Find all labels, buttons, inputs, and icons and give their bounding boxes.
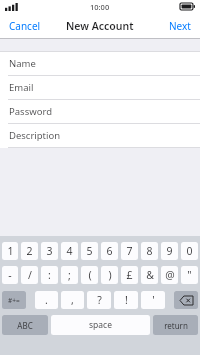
button[interactable]: ' xyxy=(141,291,165,309)
button[interactable]: ) xyxy=(101,266,118,284)
staticText: 10:00 xyxy=(90,2,110,12)
staticText: , xyxy=(71,293,74,307)
button[interactable]: 7 xyxy=(121,242,138,260)
button[interactable]: return xyxy=(153,315,198,335)
button[interactable]: Description xyxy=(0,124,200,148)
staticText: 2 xyxy=(26,244,33,258)
button[interactable]: 6 xyxy=(101,242,118,260)
staticText: : xyxy=(48,268,51,282)
staticText: 6 xyxy=(106,244,113,258)
staticText: ) xyxy=(108,268,112,282)
button[interactable]: 1 xyxy=(2,242,18,260)
button[interactable]: 9 xyxy=(161,242,178,260)
staticText: #+= xyxy=(8,296,20,305)
staticText: / xyxy=(28,268,32,282)
staticText: New Account xyxy=(66,19,134,33)
button[interactable]: Cancel xyxy=(0,13,50,38)
staticText: 1 xyxy=(7,244,14,258)
staticText: ; xyxy=(68,268,71,282)
button[interactable]: space xyxy=(51,315,150,335)
button[interactable]: @ xyxy=(161,266,178,284)
button[interactable]: & xyxy=(141,266,158,284)
staticText: return xyxy=(164,320,188,331)
button[interactable]: Next xyxy=(160,13,200,38)
staticText: . xyxy=(45,293,48,307)
button[interactable]: Name xyxy=(0,52,200,76)
staticText: ( xyxy=(88,268,92,282)
button[interactable]: ( xyxy=(81,266,98,284)
button[interactable]: Password xyxy=(0,100,200,124)
staticText: 5 xyxy=(86,244,93,258)
button[interactable]: Email xyxy=(0,76,200,100)
staticText: 9 xyxy=(166,244,173,258)
staticText: - xyxy=(8,268,12,282)
button[interactable]: 3 xyxy=(41,242,58,260)
staticText: Next xyxy=(169,19,191,33)
button[interactable]: 0 xyxy=(181,242,198,260)
staticText: ! xyxy=(125,293,128,307)
staticText: space xyxy=(89,319,112,331)
staticText: Password xyxy=(9,105,52,118)
button[interactable]: ; xyxy=(61,266,78,284)
staticText: Email xyxy=(9,81,34,94)
button[interactable]: / xyxy=(21,266,38,284)
staticText: & xyxy=(146,268,154,282)
button[interactable]: - xyxy=(2,266,18,284)
button[interactable]: " xyxy=(181,266,198,284)
staticText: @ xyxy=(165,268,175,282)
staticText: Description xyxy=(9,129,61,142)
button[interactable]: 2 xyxy=(21,242,38,260)
button[interactable]: ABC xyxy=(2,315,48,335)
button[interactable]: 4 xyxy=(61,242,78,260)
button[interactable]: £ xyxy=(121,266,138,284)
button[interactable]: Backspace xyxy=(174,291,198,309)
button[interactable]: 5 xyxy=(81,242,98,260)
staticText: 0 xyxy=(186,244,193,258)
button[interactable]: ? xyxy=(87,291,111,309)
button[interactable]: . xyxy=(35,291,58,309)
staticText: ? xyxy=(97,293,102,307)
staticText: ' xyxy=(152,293,155,307)
button[interactable]: Symbols xyxy=(2,291,26,309)
staticText: 3 xyxy=(46,244,53,258)
button[interactable]: ! xyxy=(114,291,138,309)
staticText: 8 xyxy=(146,244,153,258)
staticText: ABC xyxy=(17,320,33,331)
button[interactable]: 8 xyxy=(141,242,158,260)
staticText: " xyxy=(187,268,192,282)
staticText: £ xyxy=(126,268,133,282)
staticText: 4 xyxy=(66,244,73,258)
staticText: 7 xyxy=(126,244,133,258)
button[interactable]: : xyxy=(41,266,58,284)
staticText: Name xyxy=(9,57,36,70)
button[interactable]: , xyxy=(61,291,84,309)
staticText: Cancel xyxy=(9,19,41,33)
